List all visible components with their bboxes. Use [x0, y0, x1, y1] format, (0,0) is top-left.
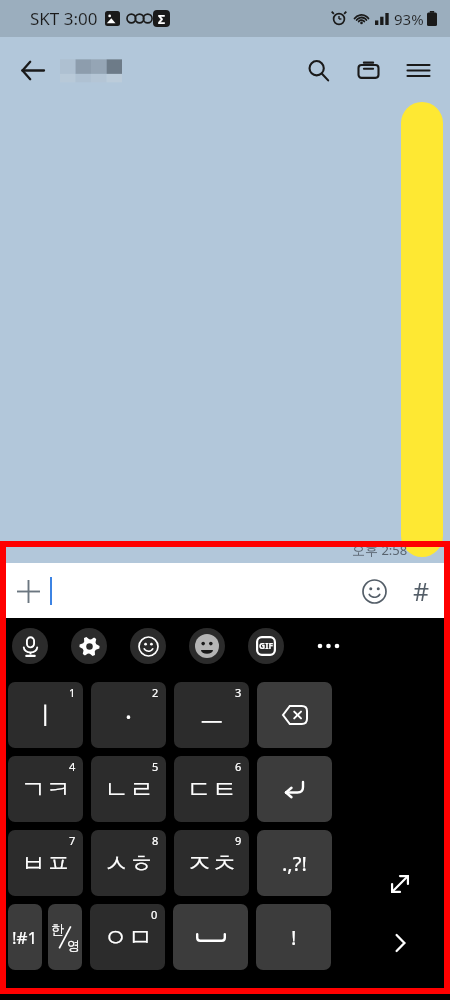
button[interactable]: ㅡ	[174, 682, 249, 748]
button[interactable]: ㅣ	[8, 682, 83, 748]
button[interactable]: ㅂㅍ	[8, 830, 83, 896]
staticText: ㅣ	[33, 700, 58, 731]
button[interactable]: .,?!	[257, 830, 332, 896]
button[interactable]: Stickers	[189, 628, 225, 664]
button[interactable]: Search	[296, 48, 340, 92]
staticText: .,?!	[282, 850, 307, 877]
button[interactable]: ㅇㅁ	[90, 904, 165, 970]
staticText: 7	[69, 833, 76, 848]
staticText: 2	[152, 685, 159, 700]
staticText: ㄱㅋ	[21, 774, 71, 805]
staticText: 4	[69, 759, 76, 774]
staticText: 0	[151, 907, 158, 922]
staticText: ㄴㄹ	[104, 774, 154, 805]
button[interactable]: ·	[91, 682, 166, 748]
button[interactable]: Enter	[257, 756, 332, 822]
button[interactable]: Voice input	[12, 628, 48, 664]
button[interactable]: !	[256, 904, 331, 970]
staticText: ·	[125, 698, 132, 733]
button[interactable]: Emoticons	[130, 628, 166, 664]
staticText: 3	[235, 685, 242, 700]
staticText: ㅡ	[199, 700, 224, 731]
button[interactable]: Hashtag search	[399, 566, 444, 616]
staticText: 9	[235, 833, 242, 848]
staticText: ㅅㅎ	[104, 848, 154, 879]
button[interactable]: Keyboard settings	[71, 628, 107, 664]
staticText: SKT 3:00	[30, 7, 98, 30]
button[interactable]: Chat room settings	[346, 48, 390, 92]
button[interactable]: ㄷㅌ	[174, 756, 249, 822]
staticText: 한	[51, 921, 64, 937]
button[interactable]: !#1	[8, 904, 42, 970]
button[interactable]: Backspace	[257, 682, 332, 748]
staticText: 영	[67, 937, 80, 953]
button[interactable]: Add attachment	[6, 565, 50, 617]
button[interactable]: Space	[173, 904, 248, 970]
staticText: Σ	[158, 11, 165, 27]
staticText: 5	[152, 759, 159, 774]
staticText: 오후 2:58	[352, 541, 408, 559]
staticText: ㅇㅁ	[103, 922, 153, 953]
button[interactable]: ㅅㅎ	[91, 830, 166, 896]
staticText: !	[291, 924, 297, 951]
button[interactable]: Korean English toggle	[48, 904, 82, 970]
staticText: 1	[69, 685, 76, 700]
staticText: ㅈㅊ	[187, 848, 237, 879]
button[interactable]: ㄱㅋ	[8, 756, 83, 822]
button[interactable]: GIF	[248, 628, 284, 664]
button[interactable]: Back	[10, 48, 54, 92]
staticText: !#1	[12, 926, 38, 949]
staticText: GIF	[259, 640, 274, 652]
button[interactable]	[401, 102, 443, 557]
staticText: 6	[235, 759, 242, 774]
staticText: ㅂㅍ	[21, 848, 71, 879]
button[interactable]: ㄴㄹ	[91, 756, 166, 822]
button[interactable]: Move keyboard right	[380, 923, 420, 963]
button[interactable]: Emoji	[349, 566, 399, 616]
staticText: #	[413, 574, 430, 608]
button[interactable]: ㅈㅊ	[174, 830, 249, 896]
staticText: ㄷㅌ	[187, 774, 237, 805]
button[interactable]: Resize keyboard	[380, 864, 420, 904]
button[interactable]: More options	[307, 624, 351, 668]
staticText: 8	[152, 833, 159, 848]
staticText: 93%	[394, 9, 424, 29]
button[interactable]: Menu	[396, 48, 440, 92]
